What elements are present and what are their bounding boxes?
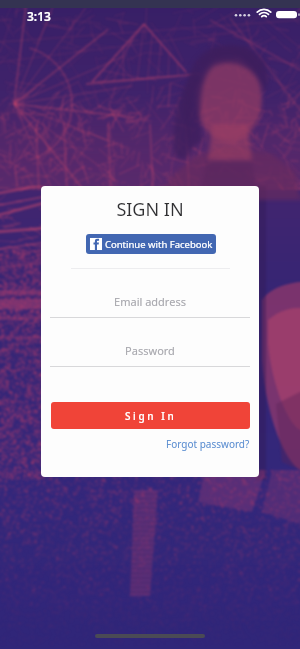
staticText: Email address <box>41 294 259 309</box>
button[interactable]: Forgot password? <box>166 437 250 451</box>
other: Signal, wifi and battery status <box>234 8 290 22</box>
staticText: Sign In <box>125 409 177 423</box>
staticText: Password <box>41 343 259 358</box>
staticText: Continue with Facebook <box>105 238 213 251</box>
button[interactable]: Sign In <box>51 402 250 429</box>
staticText: SIGN IN <box>41 197 259 222</box>
staticText: 3:13 <box>27 8 51 24</box>
button[interactable]: Continue with Facebook <box>86 234 216 254</box>
